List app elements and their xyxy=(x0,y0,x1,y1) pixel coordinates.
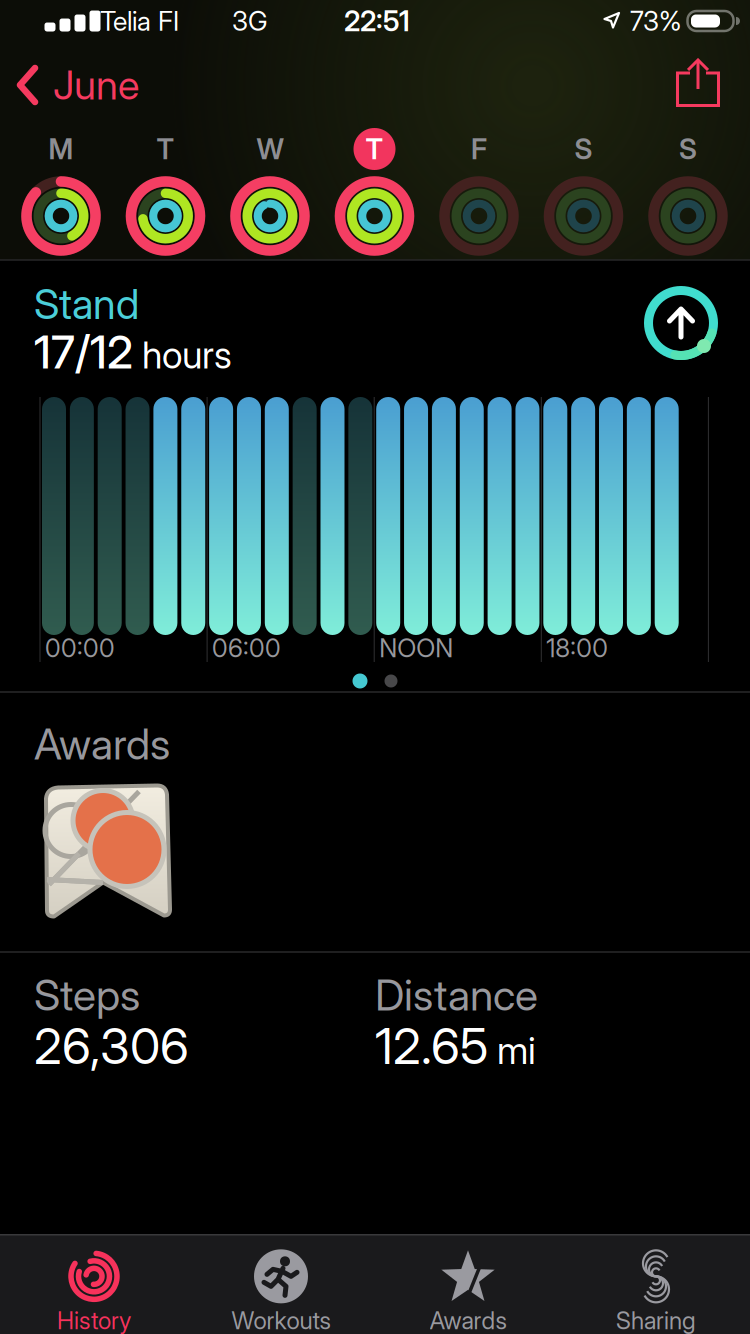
button[interactable]: Day S xyxy=(533,124,633,260)
staticText: W xyxy=(256,132,283,165)
button[interactable]: Day T xyxy=(115,124,215,260)
staticText: M xyxy=(48,132,73,165)
staticText: S xyxy=(574,132,592,165)
button[interactable]: Workouts xyxy=(231,1249,330,1334)
staticText: Steps xyxy=(34,970,140,1020)
staticText: Sharing xyxy=(616,1306,696,1334)
staticText: Stand xyxy=(34,280,139,328)
button[interactable]: History xyxy=(57,1249,131,1334)
button[interactable]: Day S xyxy=(638,124,738,260)
button[interactable]: Page 1 xyxy=(352,673,367,688)
button[interactable]: Awards xyxy=(429,1249,506,1334)
staticText: S xyxy=(679,132,697,165)
staticText: Workouts xyxy=(231,1306,330,1334)
staticText: T xyxy=(365,132,383,165)
staticText: Awards xyxy=(429,1306,506,1334)
button[interactable]: Sharing xyxy=(616,1249,696,1334)
staticText: 06:00 xyxy=(212,633,281,663)
button[interactable]: Day T xyxy=(324,124,424,260)
button[interactable]: Page 2 xyxy=(384,674,397,687)
button[interactable]: Back to June xyxy=(16,61,139,109)
staticText: 26,306 xyxy=(34,1017,189,1075)
button[interactable]: Day F xyxy=(429,124,529,260)
staticText: 17/12 xyxy=(34,325,133,379)
staticText: June xyxy=(53,61,139,109)
staticText: hours xyxy=(142,333,232,377)
staticText: 18:00 xyxy=(546,633,608,663)
staticText: Distance xyxy=(375,970,538,1020)
staticText: NOON xyxy=(379,633,453,663)
staticText: F xyxy=(471,132,487,165)
button[interactable]: Share xyxy=(676,59,720,107)
staticText: mi xyxy=(497,1028,536,1072)
staticText: 22:51 xyxy=(344,4,410,37)
staticText: Awards xyxy=(34,719,170,769)
staticText: Telia FI xyxy=(100,5,179,37)
staticText: T xyxy=(156,132,174,165)
staticText: History xyxy=(57,1306,131,1334)
button[interactable]: Day W xyxy=(220,124,320,260)
button[interactable]: Day M xyxy=(11,124,111,260)
staticText: 00:00 xyxy=(45,633,115,663)
staticText: 73% xyxy=(630,5,682,37)
staticText: 12.65 xyxy=(375,1017,488,1075)
button[interactable]: Award xyxy=(45,785,171,918)
staticText: 3G xyxy=(232,5,267,37)
